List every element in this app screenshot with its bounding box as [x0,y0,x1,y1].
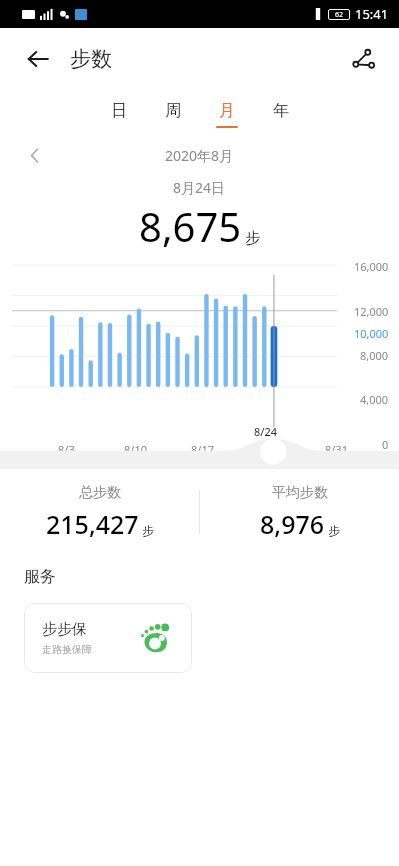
staticText: 日 [104,101,134,121]
staticText: 215,427 [46,507,139,541]
staticText: 16,000 [354,259,389,274]
staticText: 8/31 [325,442,348,457]
button[interactable]: 周 [158,101,188,128]
staticText: 15:41 [355,5,389,23]
button[interactable]: 日 [104,101,134,128]
staticText: 62 [335,10,344,20]
staticText: 4,000 [360,392,389,407]
staticText: 步 [328,523,340,538]
staticText: 0 [382,437,389,452]
button[interactable]: 年 [266,101,296,128]
staticText: 10,000 [354,326,389,341]
staticText: 8/10 [124,442,147,457]
staticText: 2020年8月 [165,146,234,165]
staticText: 8/24 [254,424,278,439]
staticText: 月 [212,101,242,121]
button[interactable]: Previous month [18,138,52,172]
staticText: 8月24日 [173,178,226,197]
button[interactable]: 平均步数 [200,484,399,541]
staticText: 12,000 [354,304,389,319]
button[interactable]: Share [341,37,385,81]
staticText: 8,000 [360,348,389,363]
button[interactable]: 总步数 [0,484,199,541]
staticText: 8,976 [260,507,325,541]
staticText: 服务 [24,567,56,587]
staticText: 总步数 [79,484,121,502]
staticText: 8/3 [58,442,75,457]
staticText: 步步保 [42,620,87,639]
staticText: 年 [266,101,296,121]
button[interactable]: Back [16,37,60,81]
staticText: 步 [142,523,154,538]
button[interactable]: 月 [212,101,242,128]
staticText: 8/17 [191,442,214,457]
staticText: 步 [245,229,260,248]
staticText: 步数 [70,46,112,72]
button[interactable]: 步步保 [24,603,192,673]
staticText: 8,675 [139,199,242,253]
staticText: 平均步数 [272,484,328,502]
staticText: 走路换保障 [42,643,92,656]
staticText: 周 [158,101,188,121]
